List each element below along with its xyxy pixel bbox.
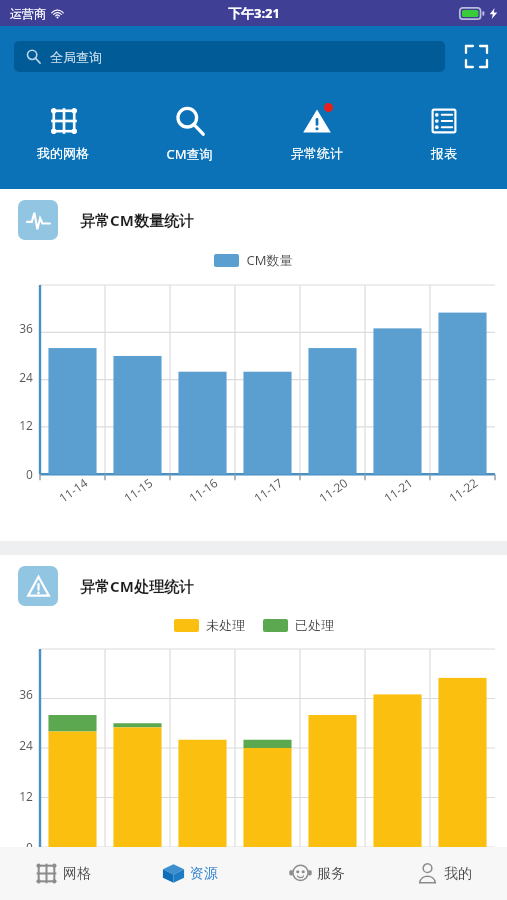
staticText: 11-21 bbox=[380, 474, 416, 506]
staticText: 我的 bbox=[444, 865, 472, 883]
staticText: 0 bbox=[26, 466, 33, 482]
staticText: 11-14 bbox=[55, 474, 91, 506]
staticText: 全局查询 bbox=[50, 49, 102, 65]
staticText: 已处理 bbox=[295, 617, 334, 633]
staticText: 网格 bbox=[63, 865, 91, 883]
button[interactable]: 扫一扫 bbox=[459, 39, 493, 73]
button[interactable]: 我的 bbox=[380, 847, 507, 900]
staticText: 36 bbox=[19, 686, 33, 702]
staticText: 36 bbox=[19, 320, 33, 336]
staticText: 异常CM处理统计 bbox=[80, 576, 194, 596]
staticText: 下午3:21 bbox=[228, 4, 280, 22]
staticText: 11-16 bbox=[185, 474, 221, 506]
staticText: 12 bbox=[19, 788, 33, 804]
staticText: 异常CM数量统计 bbox=[80, 210, 194, 230]
staticText: 异常统计 bbox=[291, 145, 343, 161]
staticText: 24 bbox=[19, 369, 33, 385]
staticText: 资源 bbox=[190, 865, 218, 883]
staticText: 0 bbox=[26, 839, 33, 855]
button[interactable]: 异常统计 bbox=[253, 99, 380, 164]
staticText: 11-20 bbox=[315, 474, 351, 506]
staticText: 运营商 bbox=[10, 6, 46, 21]
staticText: 报表 bbox=[431, 145, 457, 161]
staticText: 11-15 bbox=[120, 474, 156, 506]
button[interactable]: 报表 bbox=[380, 99, 507, 164]
staticText: 12 bbox=[19, 417, 33, 433]
staticText: 11-17 bbox=[250, 474, 286, 506]
staticText: CM查询 bbox=[166, 145, 213, 163]
button[interactable]: 我的网格 bbox=[0, 99, 126, 164]
staticText: 我的网格 bbox=[37, 145, 89, 161]
button[interactable]: CM查询 bbox=[126, 99, 253, 166]
button[interactable]: 全局查询 bbox=[14, 41, 445, 72]
staticText: 未处理 bbox=[206, 617, 245, 633]
button[interactable]: 资源 bbox=[126, 847, 253, 900]
staticText: 11-22 bbox=[445, 474, 481, 506]
staticText: CM数量 bbox=[246, 251, 293, 269]
staticText: 24 bbox=[19, 737, 33, 753]
button[interactable]: 网格 bbox=[0, 847, 126, 900]
button[interactable]: 服务 bbox=[253, 847, 380, 900]
staticText: 服务 bbox=[317, 865, 345, 883]
